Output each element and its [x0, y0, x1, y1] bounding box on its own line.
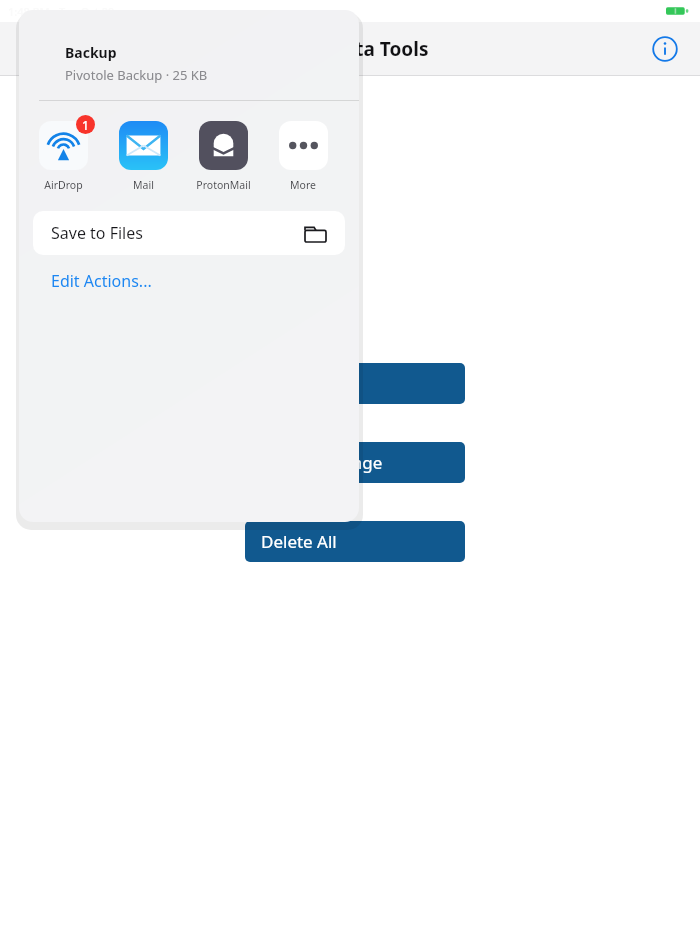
staticText: Data Tools: [330, 36, 429, 62]
staticText: Pivotole Backup · 25 KB: [65, 66, 208, 84]
button[interactable]: Export Data: [245, 363, 465, 404]
button[interactable]: Delete All: [245, 521, 465, 562]
staticText: 1:48 PM: [8, 4, 50, 19]
staticText: Import Change: [261, 451, 383, 474]
staticText: More: [290, 178, 316, 192]
staticText: Edit Actions...: [51, 270, 152, 292]
staticText: Tue Oct 29: [59, 4, 115, 19]
button[interactable]: Mail: [113, 118, 173, 192]
staticText: 1: [82, 117, 89, 133]
staticText: Save to Files: [51, 222, 143, 244]
button[interactable]: More: [273, 118, 333, 192]
button[interactable]: 1: [33, 118, 93, 192]
button[interactable]: Info: [648, 32, 682, 66]
staticText: ProtonMail: [196, 178, 251, 192]
staticText: Backup: [65, 43, 117, 62]
staticText: AirDrop: [44, 178, 83, 192]
staticText: Mail: [133, 178, 154, 192]
button[interactable]: ProtonMail: [193, 118, 253, 192]
button[interactable]: Import Change: [245, 442, 465, 483]
button[interactable]: Save to Files: [33, 211, 345, 255]
staticText: Delete All: [261, 530, 337, 553]
button[interactable]: Edit Actions...: [47, 266, 156, 296]
